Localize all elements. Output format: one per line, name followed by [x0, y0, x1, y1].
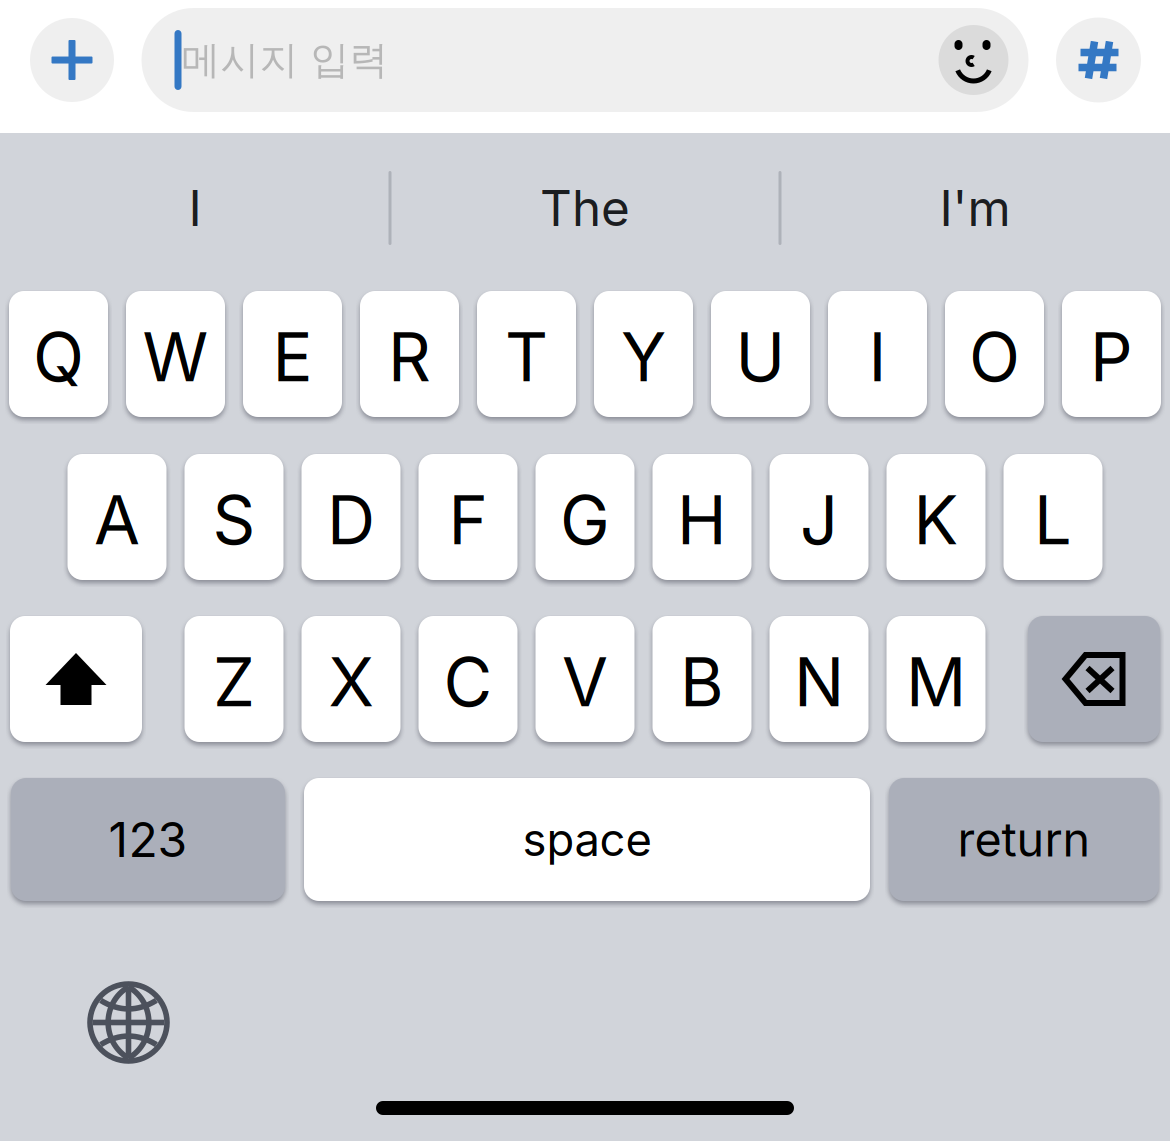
button[interactable]: S [184, 454, 283, 580]
button[interactable]: J [769, 454, 868, 580]
button[interactable]: L [1003, 454, 1102, 580]
staticText: E [272, 317, 312, 397]
staticText: 메시지 입력 [181, 36, 388, 84]
button[interactable]: V [535, 616, 634, 742]
button[interactable]: Shift [10, 616, 142, 742]
staticText: U [735, 317, 785, 397]
staticText: S [212, 480, 255, 560]
staticText: Q [33, 317, 84, 397]
button[interactable]: G [535, 454, 634, 580]
staticText: B [680, 642, 724, 722]
button[interactable]: T [477, 291, 576, 417]
staticText: A [94, 480, 140, 560]
staticText: G [560, 480, 610, 560]
staticText: The [540, 178, 630, 238]
button[interactable]: return [889, 778, 1159, 901]
button[interactable]: I'm [781, 133, 1168, 283]
button[interactable]: K [886, 454, 985, 580]
staticText: P [1090, 317, 1133, 397]
staticText: C [443, 642, 492, 722]
button[interactable]: A [67, 454, 166, 580]
staticText: O [969, 317, 1020, 397]
button[interactable]: Next keyboard [90, 984, 167, 1061]
button[interactable]: X [301, 616, 400, 742]
button[interactable]: H [652, 454, 751, 580]
staticText: Y [621, 317, 666, 397]
staticText: M [906, 642, 966, 722]
button[interactable]: Hashtag [1056, 17, 1141, 102]
staticText: space [522, 812, 651, 867]
button[interactable]: U [711, 291, 810, 417]
staticText: J [800, 480, 838, 560]
button[interactable]: W [126, 291, 225, 417]
staticText: R [388, 317, 431, 397]
button[interactable]: 123 [11, 778, 285, 901]
button[interactable]: space [304, 778, 870, 901]
staticText: K [913, 480, 958, 560]
staticText: W [142, 317, 208, 397]
staticText: I [868, 317, 886, 397]
button[interactable]: Y [594, 291, 693, 417]
button[interactable]: F [418, 454, 517, 580]
staticText: return [957, 811, 1090, 868]
staticText: X [328, 642, 373, 722]
button[interactable]: E [243, 291, 342, 417]
button[interactable]: C [418, 616, 517, 742]
staticText: 123 [108, 810, 187, 869]
staticText: I [188, 178, 201, 238]
button[interactable]: Add attachment [30, 18, 114, 102]
staticText: V [562, 642, 608, 722]
button[interactable]: I [1, 133, 388, 283]
button[interactable]: Delete [1028, 616, 1160, 742]
button[interactable]: P [1062, 291, 1161, 417]
button[interactable]: Z [184, 616, 283, 742]
button[interactable]: Q [9, 291, 108, 417]
button[interactable]: R [360, 291, 459, 417]
staticText: I'm [939, 178, 1010, 238]
button[interactable]: I [828, 291, 927, 417]
staticText: N [794, 642, 844, 722]
staticText: D [327, 480, 375, 560]
button[interactable]: Emoji [938, 25, 1008, 95]
button[interactable]: D [301, 454, 400, 580]
button[interactable]: B [652, 616, 751, 742]
button[interactable]: M [886, 616, 985, 742]
staticText: Z [213, 642, 255, 722]
button[interactable]: O [945, 291, 1044, 417]
staticText: T [505, 317, 548, 397]
staticText: L [1034, 480, 1072, 560]
button[interactable]: N [769, 616, 868, 742]
staticText: F [448, 480, 487, 560]
button[interactable]: The [391, 133, 778, 283]
staticText: H [677, 480, 727, 560]
